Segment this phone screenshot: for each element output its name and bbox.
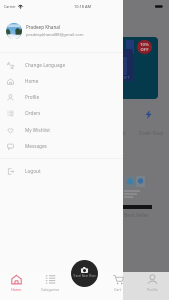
button[interactable]: Change Language [0, 57, 123, 73]
button[interactable]: Profile [135, 272, 169, 300]
staticText: Home [25, 78, 39, 84]
staticText: 10:18 AM [74, 4, 91, 9]
button[interactable]: My Wishlist [0, 122, 123, 138]
staticText: Profile [25, 94, 40, 100]
staticText: Carrier [4, 4, 16, 9]
button[interactable]: Orders [0, 105, 123, 121]
staticText: Logout [25, 168, 41, 174]
staticText: Categories [41, 287, 60, 292]
button[interactable]: Home [0, 73, 123, 89]
button[interactable]: Profile [0, 89, 123, 105]
staticText: Home [11, 287, 22, 292]
button[interactable]: Messages [0, 138, 123, 154]
staticText: Cart [114, 287, 122, 292]
staticText: Messages [25, 143, 47, 149]
button[interactable]: Categories [33, 272, 67, 300]
staticText: Payment [105, 130, 126, 137]
button[interactable]: Home [0, 272, 33, 300]
staticText: Pradeep Khanal [26, 24, 61, 30]
staticText: Profile [147, 287, 158, 292]
staticText: Flash Deal [139, 130, 164, 137]
button[interactable]: Logout [0, 163, 123, 179]
staticText: Best Seller [124, 212, 149, 219]
button[interactable]: Cart [101, 272, 135, 300]
button[interactable]: Pradeep Khanal [0, 18, 123, 44]
staticText: Orders [25, 110, 41, 116]
staticText: SOFT [120, 75, 130, 80]
staticText: My Wishlist [25, 127, 50, 133]
staticText: Change Language [25, 62, 66, 68]
staticText: Travel Near Place [73, 274, 96, 278]
staticText: pradeepkhanal88@gmail.com [26, 32, 84, 38]
staticText: 10% OFF [140, 42, 149, 52]
button[interactable]: Travel Near Place [71, 260, 98, 287]
